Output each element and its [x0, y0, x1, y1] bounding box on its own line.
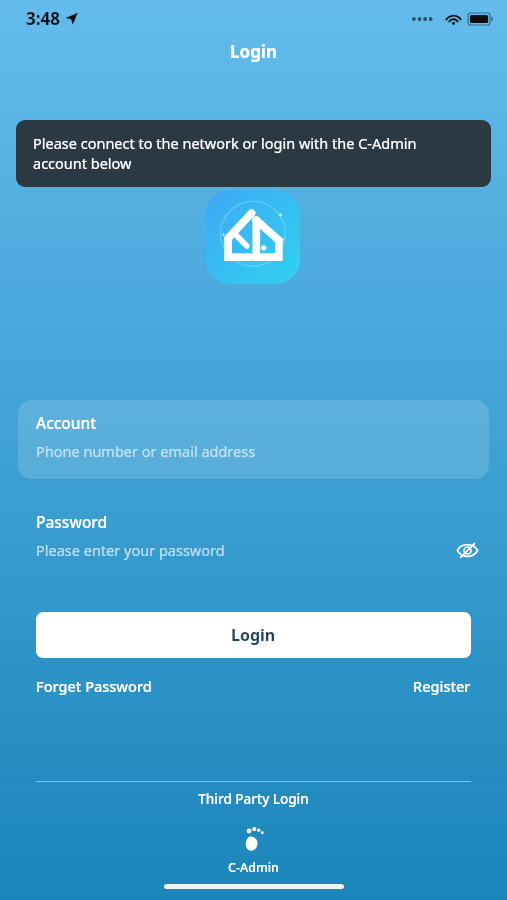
staticText: Login	[231, 624, 276, 646]
button[interactable]: C-Admin	[214, 822, 293, 878]
staticText: Account	[36, 412, 97, 433]
button[interactable]: Password	[18, 505, 489, 571]
staticText: Register	[413, 676, 471, 696]
button[interactable]: Register	[413, 672, 471, 700]
button[interactable]: Login	[36, 612, 471, 658]
staticText: Please enter your password	[36, 540, 225, 560]
button[interactable]: Show password	[445, 528, 489, 572]
button[interactable]: Forget Password	[36, 672, 152, 700]
staticText: Login	[230, 40, 278, 63]
staticText: C-Admin	[228, 859, 279, 876]
staticText: 3:48	[26, 7, 60, 30]
staticText: Forget Password	[36, 676, 152, 696]
staticText: Please connect to the network or login w…	[33, 133, 474, 174]
staticText: Phone number or email address	[36, 441, 256, 461]
staticText: Third Party Login	[198, 790, 309, 808]
button[interactable]: Account	[18, 400, 489, 479]
button[interactable]: Please connect to the network or login w…	[16, 120, 491, 187]
staticText: Password	[36, 511, 108, 532]
